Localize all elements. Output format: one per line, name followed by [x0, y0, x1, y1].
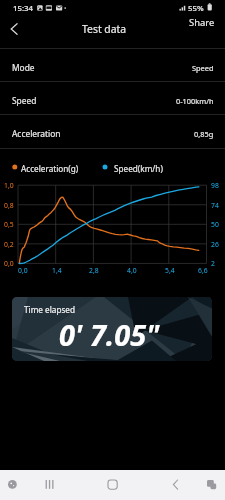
- staticText: 15:34: [13, 3, 33, 14]
- staticText: Acceleration(g): [21, 163, 79, 174]
- staticText: 5,4: [165, 266, 175, 275]
- staticText: 2,8: [89, 266, 99, 275]
- staticText: 1,4: [52, 266, 62, 275]
- staticText: Speed: [192, 63, 214, 73]
- staticText: 0,8: [4, 201, 14, 210]
- staticText: Speed: [12, 95, 37, 106]
- button[interactable]: Back: [2, 17, 26, 41]
- staticText: 26: [211, 240, 219, 249]
- button[interactable]: Home: [99, 470, 127, 500]
- staticText: Share: [189, 16, 215, 29]
- staticText: Acceleration: [12, 128, 61, 139]
- staticText: 0,5: [4, 220, 14, 229]
- staticText: 0,0: [4, 259, 14, 268]
- staticText: 55%: [188, 3, 204, 14]
- staticText: 98: [211, 181, 219, 190]
- staticText: 0,2: [4, 240, 14, 249]
- staticText: 74: [211, 201, 219, 210]
- staticText: 0,0: [18, 266, 28, 275]
- button[interactable]: Acceleration: [0, 114, 225, 147]
- button[interactable]: Speed: [0, 81, 225, 114]
- staticText: 0-100km/h: [176, 96, 214, 106]
- button[interactable]: Mode: [0, 48, 225, 81]
- staticText: Mode: [12, 62, 35, 73]
- staticText: 0' 7.05": [59, 315, 160, 354]
- staticText: 1,0: [4, 181, 14, 190]
- staticText: Speed(km/h): [114, 163, 163, 174]
- staticText: 50: [211, 220, 219, 229]
- button[interactable]: Back: [162, 470, 190, 500]
- staticText: 2: [211, 259, 215, 268]
- staticText: 4,0: [127, 266, 137, 275]
- staticText: Time elapsed: [24, 304, 76, 315]
- staticText: 0,85g: [194, 129, 214, 139]
- button[interactable]: Screenshot: [198, 470, 225, 500]
- staticText: Test data: [82, 22, 127, 36]
- button[interactable]: Assistant: [0, 470, 27, 500]
- button[interactable]: Recents: [36, 470, 64, 500]
- staticText: 6,6: [198, 266, 208, 275]
- button[interactable]: Time elapsed: [12, 297, 212, 361]
- button[interactable]: Share: [182, 13, 222, 32]
